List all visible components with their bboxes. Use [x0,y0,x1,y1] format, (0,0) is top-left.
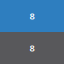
staticText: 8 [29,42,34,54]
staticText: 8 [29,10,34,22]
